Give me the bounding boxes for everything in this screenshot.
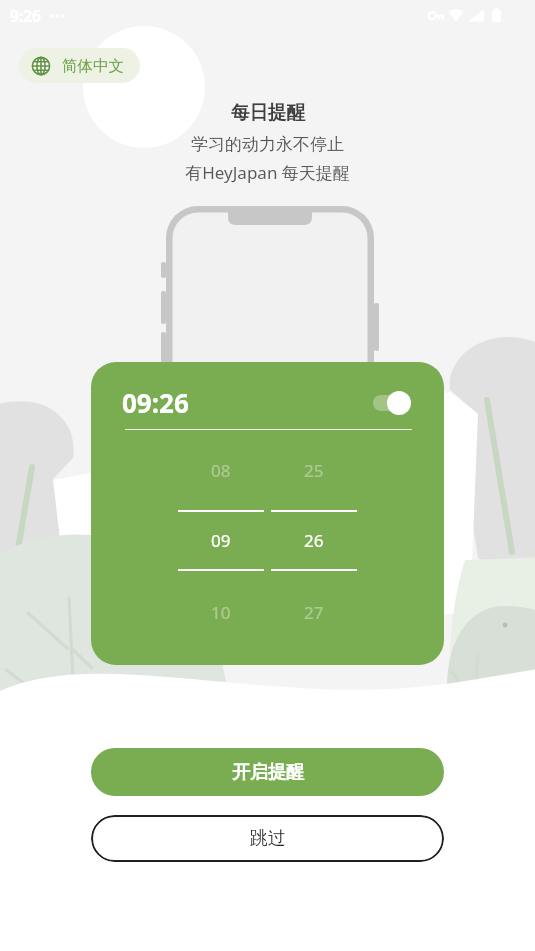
staticText: 08 bbox=[211, 459, 231, 482]
button[interactable]: Toggle daily reminder bbox=[371, 390, 411, 416]
staticText: 跳过 bbox=[250, 827, 286, 850]
staticText: 简体中文 bbox=[62, 56, 124, 76]
staticText: 每日提醒 bbox=[231, 101, 305, 124]
button[interactable]: 开启提醒 bbox=[91, 748, 444, 796]
staticText: 有HeyJapan 每天提醒 bbox=[185, 161, 350, 184]
staticText: 开启提醒 bbox=[232, 761, 304, 784]
staticText: 10 bbox=[211, 601, 231, 624]
staticText: 9:26 bbox=[10, 5, 41, 26]
staticText: 26 bbox=[304, 529, 324, 552]
button[interactable]: 简体中文 bbox=[19, 48, 140, 83]
staticText: 27 bbox=[304, 601, 324, 624]
staticText: 25 bbox=[304, 459, 324, 482]
staticText: 学习的动力永不停止 bbox=[191, 134, 344, 155]
staticText: 09 bbox=[211, 529, 231, 552]
button[interactable]: 跳过 bbox=[91, 815, 444, 862]
staticText: 09:26 bbox=[122, 385, 189, 420]
